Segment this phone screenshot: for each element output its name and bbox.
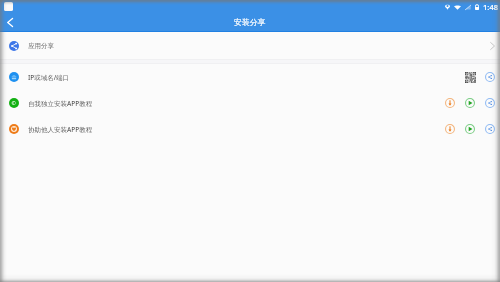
button[interactable]: Share [484, 71, 496, 83]
button[interactable]: 协助他人安装APP教程 [0, 116, 500, 142]
staticText: 1:48 [483, 2, 499, 12]
button[interactable]: Share [484, 123, 496, 135]
button[interactable]: QR code [464, 71, 476, 83]
button[interactable]: IP或域名/端口 [0, 64, 500, 90]
staticText: 应用分享 [28, 42, 54, 50]
button[interactable]: Back [3, 15, 17, 29]
staticText: IP或域名/端口 [28, 73, 70, 82]
button[interactable]: Download [444, 123, 456, 135]
staticText: 协助他人安装APP教程 [28, 125, 93, 134]
button[interactable]: 自我独立安装APP教程 [0, 90, 500, 116]
button[interactable]: 应用分享 [0, 32, 500, 59]
staticText: 自我独立安装APP教程 [28, 99, 93, 108]
button[interactable]: Play [464, 123, 476, 135]
button[interactable]: Open [486, 40, 498, 52]
button[interactable]: Play [464, 97, 476, 109]
staticText: 安装分享 [234, 17, 266, 27]
button[interactable]: Share [484, 97, 496, 109]
button[interactable]: Download [444, 97, 456, 109]
